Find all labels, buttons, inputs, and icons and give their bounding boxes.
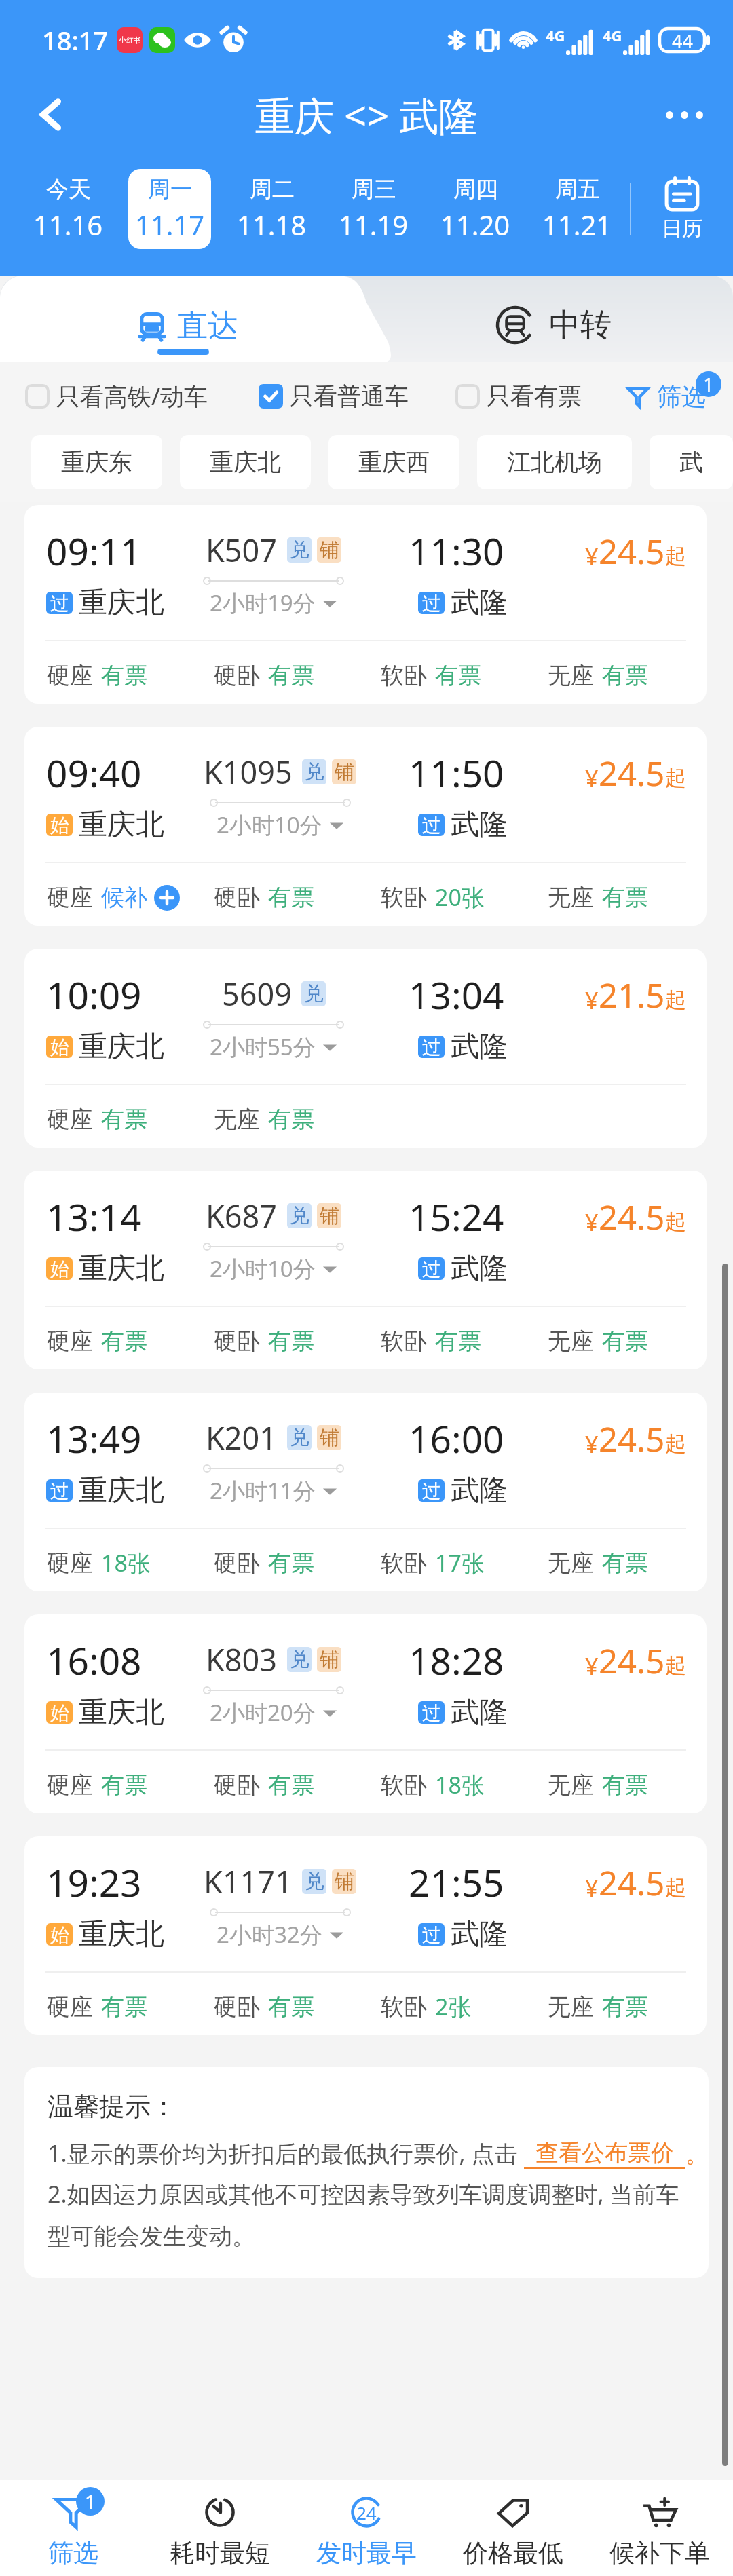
- button[interactable]: 只看有票: [455, 381, 582, 411]
- button[interactable]: 价格最低: [440, 2480, 586, 2576]
- staticText: 武隆: [451, 1473, 508, 1509]
- staticText: 16:08: [46, 1635, 142, 1686]
- button[interactable]: 武: [650, 435, 733, 489]
- button[interactable]: 只看高铁/动车: [25, 380, 208, 413]
- staticText: 软卧: [381, 883, 427, 912]
- button[interactable]: 周四: [434, 169, 516, 249]
- button[interactable]: 江北机场: [477, 435, 632, 489]
- button[interactable]: 周一: [128, 169, 211, 249]
- button[interactable]: 只看普通车: [259, 381, 409, 411]
- staticText: 武隆: [451, 585, 508, 621]
- button[interactable]: 周五: [535, 169, 618, 249]
- staticText: 11.20: [440, 206, 510, 243]
- button[interactable]: 中转: [495, 305, 612, 345]
- staticText: 重庆东: [61, 447, 132, 477]
- staticText: 过: [422, 1036, 441, 1058]
- staticText: 有票: [268, 1770, 314, 1800]
- button[interactable]: 16:08: [24, 1614, 707, 1813]
- button[interactable]: 09:40: [24, 727, 707, 926]
- staticText: 始: [50, 1257, 69, 1280]
- staticText: 有票: [602, 1327, 648, 1356]
- button[interactable]: 直达: [0, 276, 394, 362]
- button[interactable]: Back: [24, 89, 76, 140]
- staticText: 武隆: [451, 1694, 508, 1730]
- button[interactable]: 重庆西: [328, 435, 459, 489]
- staticText: 21:55: [409, 1857, 504, 1908]
- staticText: 过: [422, 814, 441, 836]
- button[interactable]: 10:09: [24, 949, 707, 1148]
- button[interactable]: 候补下单: [586, 2480, 733, 2576]
- staticText: 11.16: [33, 206, 103, 243]
- staticText: 11.21: [542, 206, 612, 243]
- button[interactable]: 筛选: [628, 381, 706, 412]
- staticText: 中转: [549, 305, 612, 345]
- button[interactable]: 周二: [230, 169, 313, 249]
- staticText: 11.19: [339, 206, 409, 243]
- staticText: 重庆西: [358, 447, 430, 477]
- staticText: ¥: [585, 541, 599, 572]
- staticText: 11.17: [135, 206, 205, 243]
- staticText: 5609: [222, 973, 292, 1015]
- staticText: 1: [85, 2488, 96, 2514]
- button[interactable]: 周三: [332, 169, 415, 249]
- staticText: 重庆北: [79, 1251, 164, 1287]
- staticText: 13:04: [409, 969, 504, 1020]
- staticText: 4G: [546, 25, 565, 45]
- staticText: 有票: [101, 1105, 147, 1134]
- staticText: 温馨提示：: [48, 2090, 176, 2123]
- staticText: 过: [422, 1479, 441, 1502]
- staticText: 20张: [435, 882, 485, 913]
- staticText: 有票: [435, 1327, 481, 1356]
- staticText: 铺: [335, 1869, 354, 1894]
- staticText: 13:14: [46, 1191, 142, 1242]
- staticText: 1.显示的票价均为折扣后的最低执行票价, 点击: [48, 2138, 524, 2169]
- staticText: 44: [672, 29, 693, 52]
- staticText: 始: [50, 1036, 69, 1058]
- staticText: 硬卧: [214, 1770, 260, 1800]
- staticText: 重庆北: [210, 447, 281, 477]
- staticText: 无座: [214, 1105, 260, 1134]
- staticText: 软卧: [381, 1549, 427, 1578]
- staticText: 过: [422, 1257, 441, 1280]
- button[interactable]: 24: [293, 2480, 440, 2576]
- staticText: 24.5: [599, 529, 665, 574]
- staticText: 铺: [320, 537, 339, 563]
- staticText: 有票: [268, 1992, 314, 2022]
- staticText: 重庆北: [79, 1916, 164, 1952]
- staticText: 2小时20分: [210, 1697, 316, 1728]
- staticText: 查看公布票价: [535, 2138, 674, 2167]
- staticText: 硬卧: [214, 1549, 260, 1578]
- button[interactable]: 1: [0, 2480, 147, 2576]
- button[interactable]: More options: [658, 89, 710, 140]
- staticText: 24.5: [599, 1860, 665, 1906]
- button[interactable]: 13:14: [24, 1171, 707, 1369]
- staticText: 24.5: [599, 1194, 665, 1240]
- staticText: 无座: [548, 883, 594, 912]
- staticText: 兑: [290, 537, 309, 563]
- staticText: ¥: [585, 1428, 599, 1460]
- staticText: 直达: [177, 307, 238, 345]
- button[interactable]: 日历: [631, 159, 733, 259]
- staticText: 武隆: [451, 1251, 508, 1287]
- staticText: 无座: [548, 661, 594, 690]
- staticText: 武隆: [451, 807, 508, 843]
- button[interactable]: 重庆东: [31, 435, 162, 489]
- staticText: 候补下单: [609, 2537, 710, 2569]
- button[interactable]: 今天: [26, 169, 109, 249]
- staticText: 09:11: [46, 525, 142, 576]
- staticText: 无座: [548, 1992, 594, 2022]
- staticText: 软卧: [381, 1992, 427, 2022]
- staticText: 有票: [602, 1992, 648, 2022]
- button[interactable]: 19:23: [24, 1836, 707, 2035]
- button[interactable]: 13:49: [24, 1393, 707, 1591]
- staticText: 有票: [101, 1327, 147, 1356]
- staticText: 硬座: [47, 1770, 93, 1800]
- staticText: 17张: [435, 1547, 485, 1578]
- button[interactable]: 重庆北: [180, 435, 311, 489]
- staticText: 只看有票: [487, 381, 582, 411]
- button[interactable]: 耗时最短: [147, 2480, 293, 2576]
- staticText: 无座: [548, 1327, 594, 1356]
- staticText: 18:28: [409, 1635, 504, 1686]
- staticText: K1095: [204, 751, 293, 793]
- button[interactable]: 09:11: [24, 505, 707, 704]
